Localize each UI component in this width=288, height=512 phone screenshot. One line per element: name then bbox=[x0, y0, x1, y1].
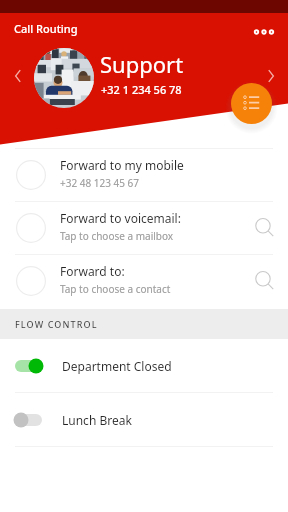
button[interactable]: Department Closed bbox=[0, 339, 288, 392]
staticText: Tap to choose a mailbox bbox=[60, 229, 174, 243]
staticText: Department Closed bbox=[62, 358, 172, 374]
button[interactable]: Previous bbox=[4, 62, 32, 90]
staticText: Tap to choose a contact bbox=[60, 282, 171, 296]
button[interactable]: Next bbox=[257, 62, 285, 90]
staticText: Forward to voicemail: bbox=[60, 210, 181, 226]
button[interactable]: Search bbox=[244, 259, 288, 303]
button[interactable]: Forward to my mobile bbox=[0, 149, 288, 201]
button[interactable]: More options bbox=[246, 14, 282, 50]
staticText: Forward to: bbox=[60, 263, 125, 279]
staticText: Support bbox=[100, 49, 184, 79]
staticText: Lunch Break bbox=[62, 412, 132, 428]
button[interactable]: Forward to: bbox=[0, 255, 288, 307]
button[interactable]: Forward to voicemail: bbox=[0, 202, 288, 254]
button[interactable]: Menu bbox=[231, 83, 272, 124]
button[interactable]: Lunch Break bbox=[0, 393, 288, 446]
staticText: Forward to my mobile bbox=[60, 157, 184, 173]
staticText: Call Routing bbox=[14, 21, 78, 36]
staticText: FLOW CONTROL bbox=[15, 318, 98, 330]
button[interactable]: Search bbox=[244, 206, 288, 250]
staticText: +32 48 123 45 67 bbox=[60, 176, 140, 190]
staticText: +32 1 234 56 78 bbox=[101, 82, 182, 97]
